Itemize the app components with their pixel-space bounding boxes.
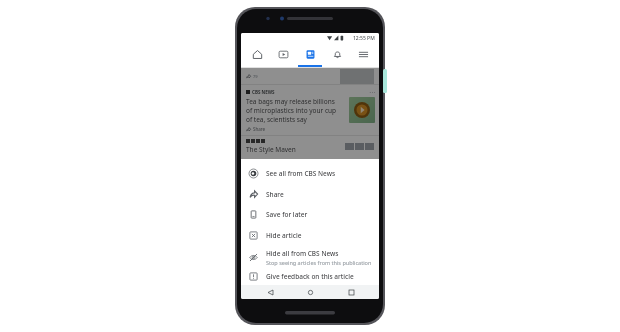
staticText: 12:55 PM [353, 35, 375, 42]
button[interactable]: Hide all from CBS News [241, 246, 379, 268]
staticText: Give feedback on this article [266, 272, 354, 281]
staticText: Hide article [266, 231, 302, 240]
staticText: Stop seeing articles from this publicati… [266, 259, 372, 266]
button[interactable]: Headlines [299, 44, 321, 65]
staticText: Share [266, 190, 284, 199]
button[interactable]: Save for later [241, 204, 379, 225]
button[interactable]: Hide article [241, 225, 379, 246]
button[interactable]: Notifications [326, 44, 348, 65]
button[interactable]: Back [258, 285, 282, 299]
staticText: ⋯ [369, 88, 375, 95]
button[interactable]: Recents [339, 285, 363, 299]
staticText: Save for later [266, 210, 308, 219]
staticText: See all from CBS News [266, 169, 336, 178]
staticText: Hide all from CBS News [266, 249, 339, 258]
staticText: Tea bags may release billions [246, 97, 335, 106]
button[interactable]: Give feedback on this article [241, 268, 379, 285]
button[interactable]: Menu [352, 44, 374, 65]
button[interactable]: Home [298, 285, 322, 299]
button[interactable]: See all from CBS News [241, 162, 379, 184]
staticText: 79 [253, 74, 258, 79]
staticText: The Style Maven [246, 145, 296, 154]
button[interactable]: Videos [272, 44, 294, 65]
staticText: of tea, scientists say [246, 115, 307, 124]
staticText: Share [253, 126, 266, 132]
button[interactable]: Home [246, 44, 268, 65]
staticText: of microplastics into your cup [246, 106, 337, 115]
staticText: CBS NEWS [252, 89, 275, 95]
button[interactable]: Share [241, 184, 379, 204]
